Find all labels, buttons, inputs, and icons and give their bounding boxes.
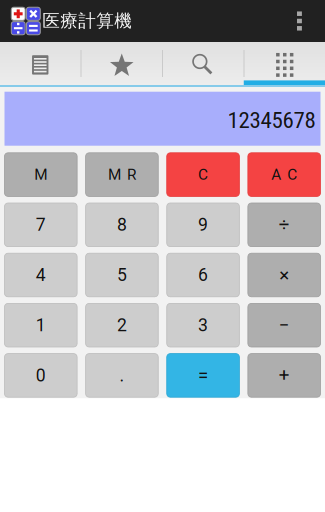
staticText: C: [198, 166, 208, 184]
staticText: 3: [198, 315, 208, 335]
staticText: .: [119, 365, 124, 386]
staticText: 5: [117, 265, 127, 285]
staticText: +: [279, 364, 290, 386]
button[interactable]: 3: [167, 303, 239, 347]
staticText: 2: [117, 315, 127, 335]
button[interactable]: =: [167, 354, 239, 397]
staticText: 4: [36, 265, 46, 285]
button[interactable]: 8: [86, 203, 158, 247]
staticText: −: [279, 314, 290, 336]
staticText: =: [198, 364, 208, 386]
staticText: 12345678: [227, 107, 315, 134]
button[interactable]: 5: [86, 253, 158, 297]
button[interactable]: C: [167, 153, 239, 196]
button[interactable]: 2: [86, 303, 158, 347]
button[interactable]: ×: [248, 253, 320, 297]
staticText: ÷: [279, 214, 290, 236]
button[interactable]: .: [86, 354, 158, 397]
staticText: 医療計算機: [42, 10, 132, 32]
button[interactable]: Search: [163, 42, 243, 85]
button[interactable]: Keypad: [244, 42, 325, 85]
staticText: 8: [117, 214, 127, 235]
button[interactable]: M R: [86, 153, 158, 196]
button[interactable]: 6: [167, 253, 239, 297]
button[interactable]: 4: [4, 253, 77, 297]
button[interactable]: Favorites: [81, 42, 162, 85]
button[interactable]: M: [4, 153, 77, 196]
staticText: 6: [198, 265, 208, 285]
staticText: 7: [36, 214, 46, 235]
staticText: M: [34, 166, 47, 184]
staticText: M R: [108, 166, 136, 184]
button[interactable]: ÷: [248, 203, 320, 247]
button[interactable]: A C: [248, 153, 320, 196]
button[interactable]: More options: [287, 0, 325, 42]
button[interactable]: 9: [167, 203, 239, 247]
button[interactable]: −: [248, 303, 320, 347]
staticText: A C: [271, 166, 297, 184]
staticText: 1: [36, 315, 46, 335]
staticText: 9: [198, 214, 208, 235]
staticText: ×: [279, 264, 289, 286]
button[interactable]: 1: [4, 303, 77, 347]
staticText: 0: [36, 365, 46, 386]
button[interactable]: +: [248, 354, 320, 397]
button[interactable]: 0: [4, 354, 77, 397]
button[interactable]: 7: [4, 203, 77, 247]
button[interactable]: List: [0, 42, 80, 85]
